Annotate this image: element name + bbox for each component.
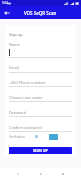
button[interactable]: Back	[0, 6, 13, 19]
staticText: Email	[9, 65, 19, 70]
staticText: SIGN UP	[33, 148, 48, 153]
button[interactable]: Home	[36, 169, 46, 179]
staticText: Confirm password	[9, 125, 42, 130]
staticText: VDS SeQR Scan	[24, 10, 57, 16]
button[interactable]: SIGN UP	[9, 147, 72, 154]
button[interactable]: Verification checkbox	[35, 135, 38, 138]
staticText: 9:24	[2, 1, 8, 5]
button[interactable]: Recents	[58, 169, 68, 179]
staticText: Verification	[9, 135, 25, 139]
staticText: Sign up	[9, 32, 23, 37]
staticText: Password	[9, 110, 27, 115]
staticText: +260 Phone number	[9, 80, 46, 85]
button[interactable]: Send verification code	[49, 134, 58, 140]
staticText: Choose user name	[9, 95, 43, 100]
staticText: Name	[9, 42, 20, 47]
button[interactable]: Back	[13, 169, 23, 179]
